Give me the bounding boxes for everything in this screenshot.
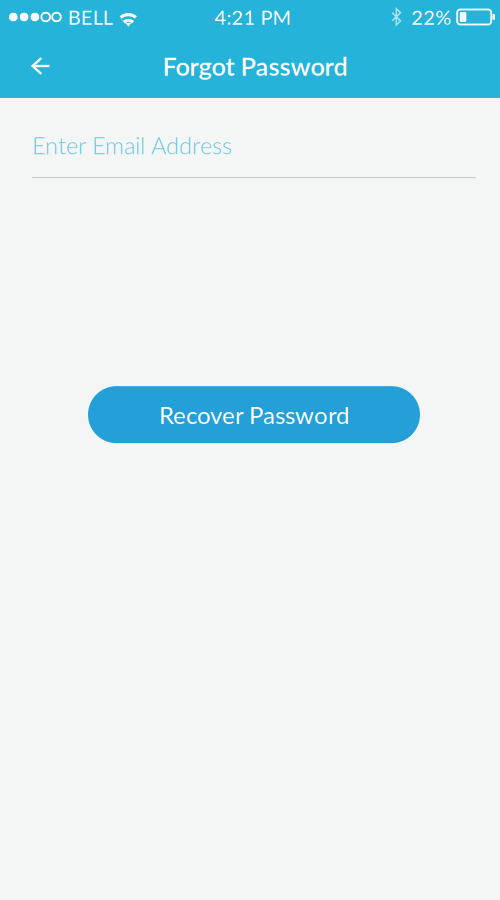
button[interactable]: Enter Email Address [0,98,500,178]
button[interactable]: Back [19,44,63,88]
staticText: Enter Email Address [32,131,232,159]
staticText: 4:21 PM [214,5,291,29]
staticText: 22% [411,5,451,29]
staticText: BELL [68,5,113,29]
staticText: Recover Password [159,400,349,429]
staticText: Forgot Password [162,51,347,81]
button[interactable]: Recover Password [88,386,420,443]
